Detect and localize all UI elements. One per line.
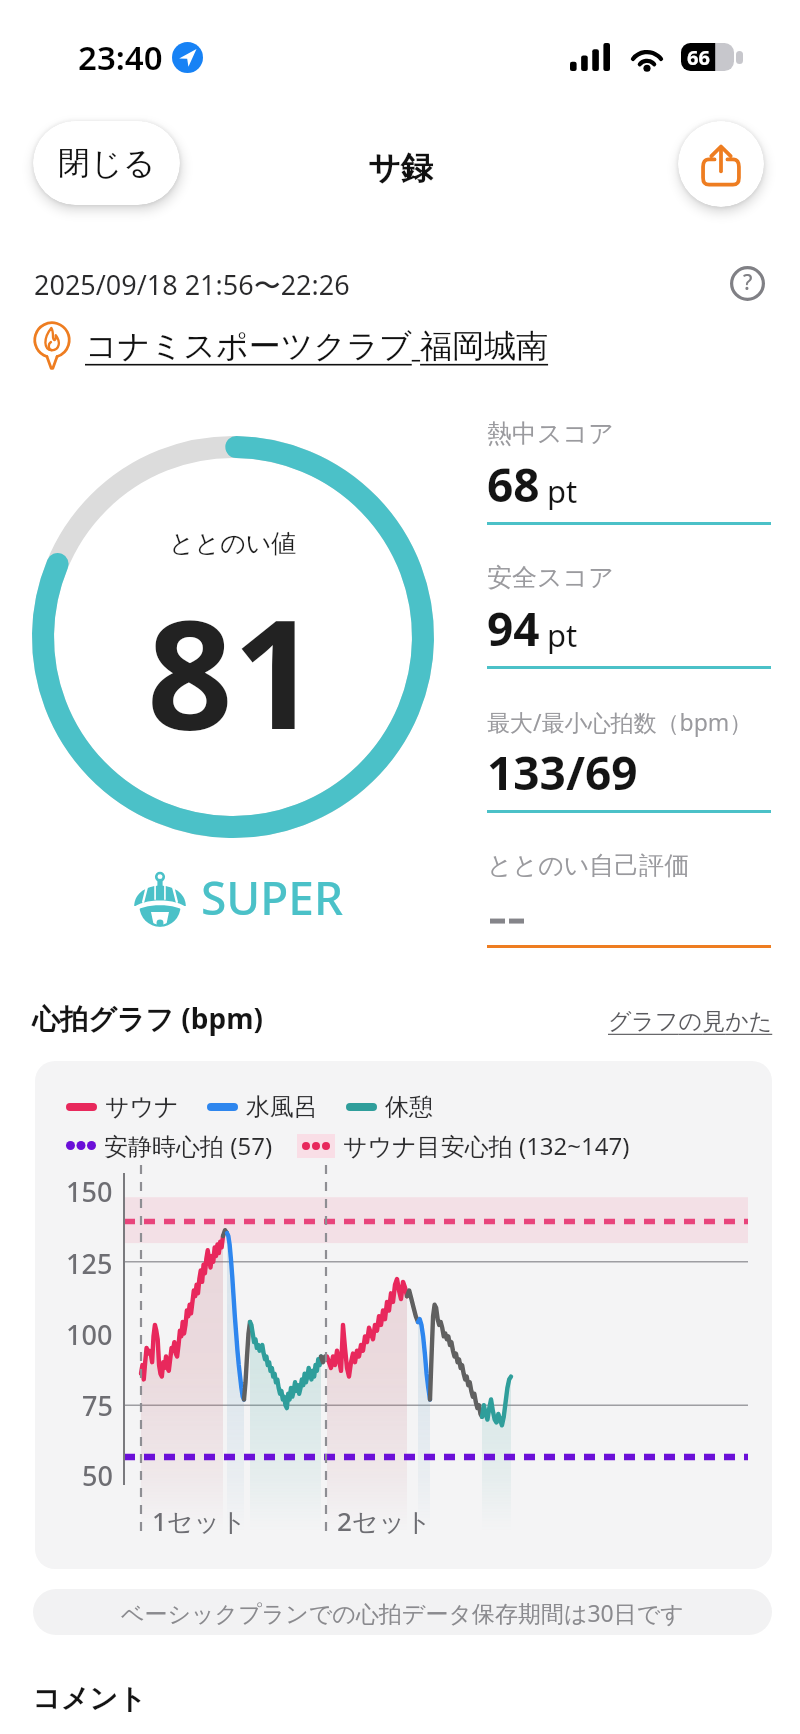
staticText: 安静時心拍 (57) [104,1129,273,1162]
staticText: 2025/09/18 21:56〜22:26 [34,266,350,303]
staticText: 23:40 [78,35,163,80]
staticText: 水風呂 [246,1092,318,1122]
staticText: コメント [32,1681,147,1716]
staticText: ととのい自己評価 [487,850,690,881]
staticText: 心拍グラフ (bpm) [32,999,263,1037]
staticText: 最大/最小心拍数（bpm） [487,706,753,737]
staticText: グラフの見かた [608,1007,773,1036]
staticText: pt [547,614,578,656]
staticText: 94 [487,597,540,660]
staticText: SUPER [201,866,344,929]
staticText: ? [743,268,753,297]
staticText: 150 [66,1173,113,1210]
staticText: ベーシックプランでの心拍データ保存期間は30日です [121,1597,684,1628]
button[interactable]: Help [730,266,765,301]
staticText: 安全スコア [487,562,614,593]
staticText: サウナ [105,1092,179,1122]
staticText: 閉じる [58,143,156,183]
staticText: 125 [66,1245,113,1282]
button[interactable]: グラフの見かた [608,1007,773,1036]
staticText: サ録 [368,148,433,188]
staticText: 75 [82,1387,113,1424]
staticText: pt [547,470,578,512]
button[interactable]: コナミスポーツクラブ 福岡城南 [27,320,549,370]
staticText: ととのい値 [169,528,297,559]
staticText: サウナ目安心拍 (132~147) [343,1129,630,1162]
staticText: 50 [82,1457,113,1494]
button[interactable]: 閉じる [33,121,180,205]
staticText: 66 [687,44,710,71]
staticText: 1セット [152,1503,247,1539]
staticText: 100 [66,1316,113,1353]
staticText: 熱中スコア [487,418,614,449]
staticText: 2セット [337,1503,432,1539]
button[interactable]: Share [678,121,764,207]
staticText: 68 [487,453,540,516]
staticText: コナミスポーツクラブ 福岡城南 [85,323,549,367]
staticText: 81 [147,569,319,773]
staticText: 休憩 [385,1092,433,1122]
staticText: 133/69 [487,741,638,804]
